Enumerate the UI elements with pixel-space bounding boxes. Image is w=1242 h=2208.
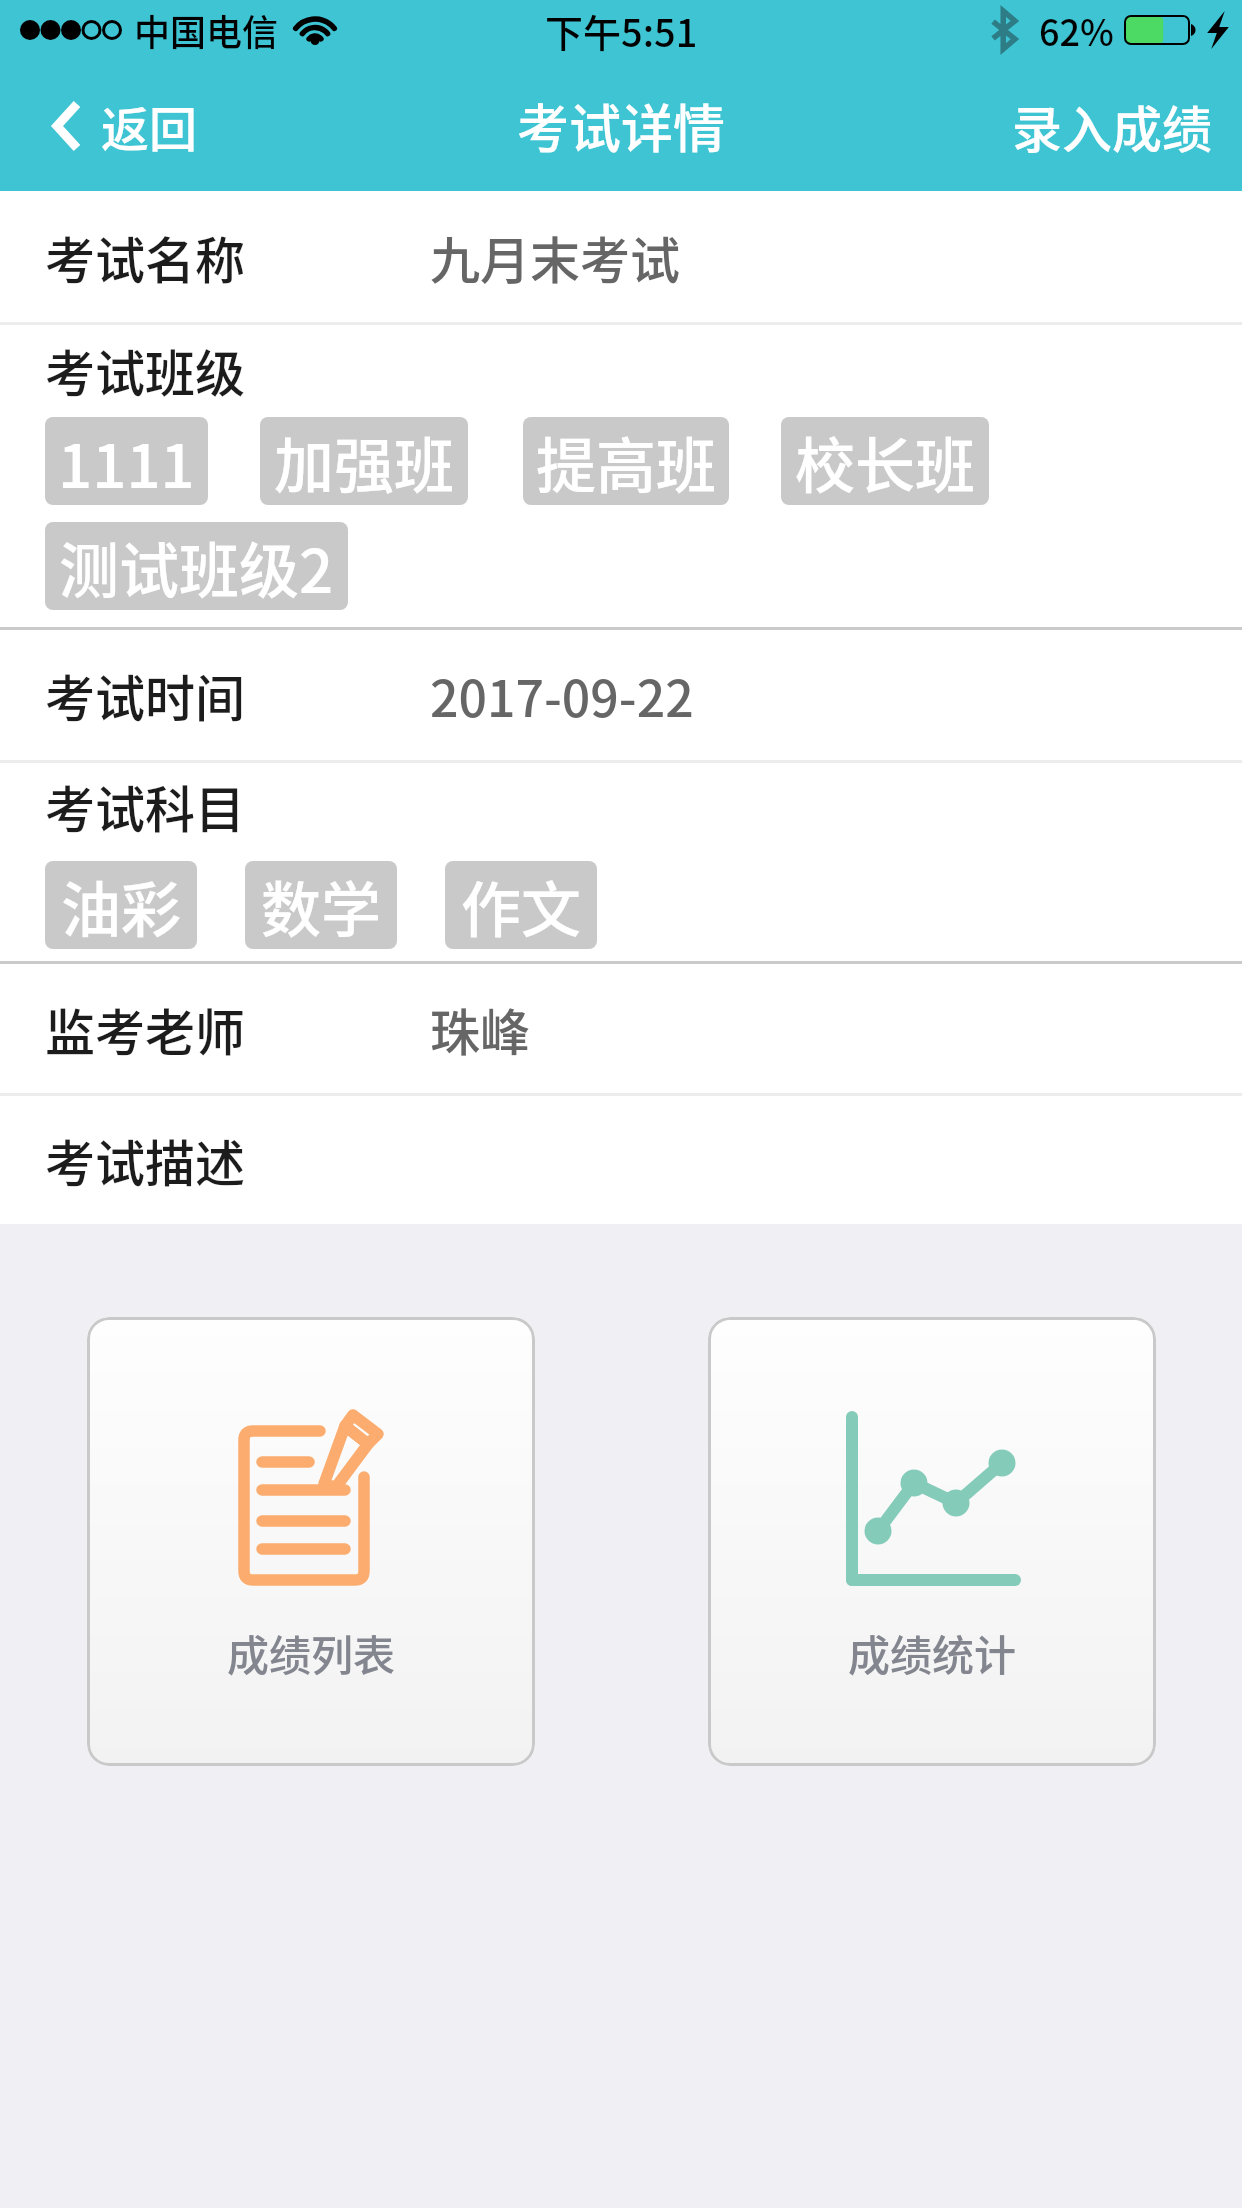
staticText: 珠峰 — [430, 993, 530, 1065]
button[interactable]: 加强班 — [260, 417, 468, 505]
staticText: 测试班级2 — [59, 523, 334, 610]
staticText: 成绩列表 — [227, 1622, 396, 1683]
button[interactable]: 作文 — [445, 861, 597, 949]
staticText: 加强班 — [274, 418, 454, 505]
staticText: 返回 — [101, 91, 198, 161]
staticText: 数学 — [261, 862, 381, 949]
staticText: 考试描述 — [45, 1124, 245, 1196]
staticText: 考试名称 — [45, 221, 245, 293]
staticText: 62% — [1039, 4, 1114, 56]
button[interactable]: 成绩列表 — [87, 1317, 535, 1766]
staticText: 2017-09-22 — [430, 659, 694, 731]
button[interactable]: 油彩 — [45, 861, 197, 949]
staticText: 提高班 — [536, 418, 716, 505]
staticText: 1111 — [58, 418, 195, 505]
staticText: 考试班级 — [45, 334, 245, 406]
button[interactable]: 成绩统计 — [708, 1317, 1156, 1766]
button[interactable]: 数学 — [245, 861, 397, 949]
button[interactable]: 录入成绩 — [982, 66, 1242, 186]
staticText: 成绩统计 — [848, 1622, 1017, 1683]
staticText: 下午5:51 — [545, 3, 698, 58]
button[interactable]: 测试班级2 — [45, 522, 348, 610]
staticText: 考试时间 — [45, 659, 245, 731]
staticText: 录入成绩 — [1012, 90, 1212, 162]
button[interactable]: 提高班 — [523, 417, 729, 505]
staticText: 九月末考试 — [430, 221, 680, 293]
staticText: 中国电信 — [134, 4, 279, 56]
staticText: 考试科目 — [45, 770, 245, 842]
staticText: 监考老师 — [45, 993, 245, 1065]
button[interactable]: 返回 — [0, 67, 238, 185]
staticText: 校长班 — [795, 418, 975, 505]
button[interactable]: 校长班 — [781, 417, 989, 505]
staticText: 考试详情 — [517, 88, 726, 163]
staticText: 作文 — [461, 862, 581, 949]
button[interactable]: 1111 — [45, 417, 208, 505]
staticText: 油彩 — [61, 862, 181, 949]
